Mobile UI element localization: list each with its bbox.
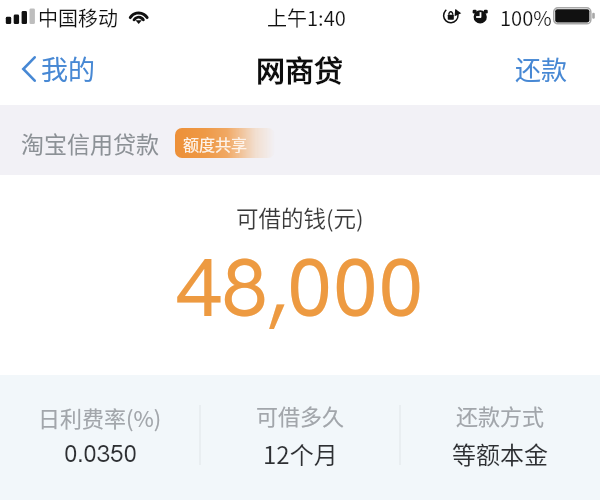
button[interactable]: 还款方式 xyxy=(400,375,600,500)
staticText: 可借多久 xyxy=(256,399,345,431)
staticText: 还款 xyxy=(515,50,568,88)
staticText: 等额本金 xyxy=(452,436,548,471)
staticText: 我的 xyxy=(41,49,95,88)
button[interactable]: 额度共享 xyxy=(175,128,275,158)
staticText: 48,000 xyxy=(176,234,424,340)
other: Rotation lock xyxy=(443,7,463,24)
staticText: 上午1:40 xyxy=(267,3,346,32)
staticText: 日利费率(%) xyxy=(38,401,162,433)
button[interactable]: 可借多久 xyxy=(200,375,400,500)
staticText: 0.0350 xyxy=(64,438,137,469)
other: Alarm xyxy=(472,6,489,25)
staticText: 中国移动 xyxy=(38,3,118,32)
staticText: 100% xyxy=(500,3,552,32)
staticText: 可借的钱(元) xyxy=(236,201,364,234)
button[interactable]: 我的 xyxy=(0,39,108,98)
staticText: 还款方式 xyxy=(456,399,545,431)
staticText: 额度共享 xyxy=(183,132,248,155)
staticText: 网商贷 xyxy=(256,48,344,90)
staticText: 淘宝信用贷款 xyxy=(21,126,159,159)
staticText: 12个月 xyxy=(263,436,338,471)
button[interactable]: 还款 xyxy=(499,40,600,98)
button[interactable]: 日利费率(%) xyxy=(0,375,200,500)
